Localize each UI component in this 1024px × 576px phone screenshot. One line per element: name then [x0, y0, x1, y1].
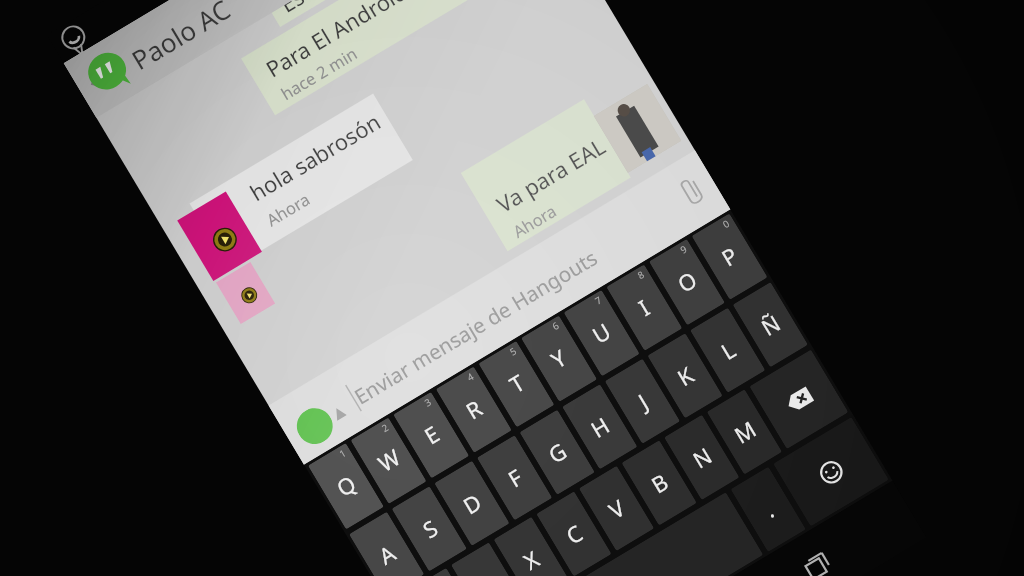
staticText: 3 — [422, 395, 435, 411]
button[interactable]: Backspace — [749, 349, 848, 449]
staticText: M — [729, 414, 762, 450]
staticText: 2 — [380, 421, 393, 436]
button[interactable] — [534, 492, 763, 576]
button[interactable] — [216, 262, 275, 324]
button[interactable]: Estoy — [249, 0, 531, 27]
staticText: U — [587, 316, 617, 350]
staticText: J — [633, 387, 654, 416]
button[interactable]: U — [564, 290, 640, 376]
button[interactable]: S — [392, 486, 467, 571]
staticText: L — [715, 334, 742, 367]
button[interactable]: C — [536, 491, 612, 576]
staticText: Enviar mensaje de Hangouts — [349, 243, 602, 410]
button[interactable]: Q — [308, 443, 384, 529]
button[interactable]: W — [350, 417, 427, 504]
button[interactable]: Recent apps — [774, 523, 858, 576]
button[interactable]: O — [649, 239, 725, 325]
button[interactable]: . — [730, 467, 806, 552]
button[interactable]: N — [664, 415, 740, 500]
staticText: 8 — [635, 268, 648, 283]
staticText: S — [417, 513, 443, 545]
button[interactable]: Ñ — [733, 282, 808, 367]
staticText: hace 2 min — [276, 41, 361, 104]
staticText: Paolo AC — [125, 0, 237, 78]
button[interactable]: hola sabrosón — [190, 94, 413, 270]
button[interactable]: E — [393, 392, 469, 478]
button[interactable]: A — [349, 512, 424, 576]
staticText: Para El Androide E — [260, 0, 439, 84]
staticText: Q — [331, 468, 362, 503]
button[interactable]: X — [493, 517, 569, 576]
button[interactable]: Shift — [389, 568, 484, 576]
button[interactable]: J — [605, 358, 680, 444]
staticText: hola sabrosón — [244, 106, 387, 208]
staticText: Ñ — [756, 307, 787, 343]
staticText: 0 — [721, 217, 734, 232]
staticText: 1 — [337, 446, 350, 462]
staticText: Estoy — [274, 0, 337, 19]
button[interactable]: I — [606, 264, 682, 351]
staticText: E — [419, 419, 445, 451]
staticText: F — [502, 462, 529, 494]
button[interactable]: Y — [521, 315, 597, 402]
staticText: Ahora — [262, 187, 314, 230]
staticText: 7 — [593, 293, 606, 308]
staticText: G — [543, 436, 572, 470]
button[interactable]: H — [562, 384, 638, 469]
button[interactable]: Va para EAL — [461, 99, 631, 251]
staticText: 9 — [678, 242, 691, 257]
staticText: 4 — [465, 370, 478, 385]
staticText: H — [585, 410, 615, 445]
button[interactable]: K — [647, 333, 723, 418]
staticText: T — [504, 368, 530, 400]
staticText: D — [457, 487, 487, 521]
staticText: 6 — [550, 319, 563, 334]
staticText: X — [518, 543, 545, 576]
staticText: K — [672, 360, 699, 393]
staticText: Y — [545, 342, 573, 375]
button[interactable]: Para El Androide E — [241, 0, 569, 115]
staticText: C — [560, 517, 589, 551]
staticText: 5 — [507, 344, 520, 360]
button[interactable]: T — [478, 341, 555, 427]
button[interactable]: V — [579, 466, 654, 551]
staticText: W — [372, 442, 406, 479]
staticText: I — [633, 292, 656, 323]
staticText: . — [758, 495, 780, 524]
staticText: Ahora — [509, 199, 560, 242]
button[interactable]: M — [707, 389, 782, 475]
staticText: A — [373, 538, 402, 571]
button[interactable]: F — [477, 435, 552, 520]
button[interactable]: B — [621, 440, 697, 526]
button[interactable] — [177, 191, 262, 281]
button[interactable]: G — [519, 409, 595, 495]
staticText: R — [460, 393, 487, 426]
button[interactable]: D — [434, 461, 510, 546]
button[interactable]: Emoji — [773, 417, 889, 526]
staticText: O — [672, 264, 703, 299]
staticText: B — [646, 466, 674, 500]
staticText: V — [603, 492, 631, 525]
button[interactable]: Attach — [663, 162, 720, 219]
button[interactable]: L — [690, 307, 765, 393]
staticText: P — [716, 240, 743, 273]
button[interactable]: Z — [451, 542, 526, 576]
button[interactable]: Send — [290, 401, 339, 451]
staticText: Va para EAL — [491, 131, 612, 220]
button[interactable]: P — [691, 213, 768, 300]
button[interactable]: Back — [71, 57, 120, 106]
staticText: N — [687, 440, 718, 475]
button[interactable]: R — [436, 366, 512, 453]
